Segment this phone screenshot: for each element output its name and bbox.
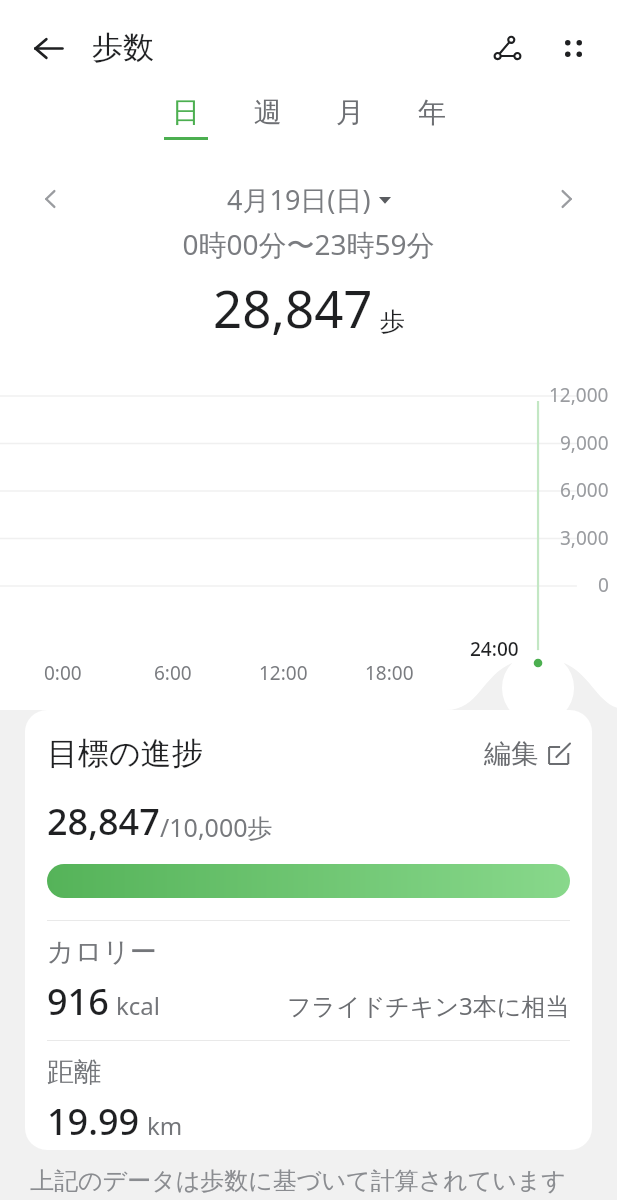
button[interactable]: Next day (543, 176, 589, 222)
staticText: 28,847 (213, 273, 373, 342)
button[interactable]: 月 (322, 95, 378, 137)
staticText: 4月19日(日) (227, 181, 371, 218)
staticText: カロリー (47, 935, 157, 969)
staticText: 12:00 (259, 660, 308, 686)
button[interactable]: 年 (404, 95, 460, 137)
staticText: 目標の進捗 (47, 734, 203, 773)
staticText: 歩 (380, 306, 405, 337)
button[interactable]: 日 (158, 95, 214, 140)
staticText: 18:00 (365, 660, 414, 686)
staticText: kcal (116, 989, 160, 1022)
staticText: 0時00分〜23時59分 (0, 225, 617, 263)
staticText: フライドチキン3本に相当 (287, 989, 570, 1022)
button[interactable]: 4月19日(日) (227, 181, 391, 218)
button[interactable]: Share (483, 24, 531, 72)
staticText: 3,000 (560, 525, 609, 551)
staticText: 6,000 (560, 477, 609, 503)
staticText: 6:00 (154, 660, 192, 686)
staticText: 距離 (47, 1055, 101, 1089)
button[interactable]: Previous day (28, 176, 74, 222)
staticText: 916 (47, 977, 109, 1026)
staticText: 年 (418, 95, 446, 130)
button[interactable]: 編集 (484, 737, 570, 771)
staticText: 0:00 (44, 660, 82, 686)
staticText: 19.99 (47, 1097, 140, 1146)
staticText: 9,000 (560, 430, 609, 456)
button[interactable]: More options (549, 24, 597, 72)
staticText: 24:00 (470, 636, 519, 662)
staticText: 28,847 (47, 797, 160, 846)
staticText: 12,000 (549, 382, 609, 408)
staticText: 月 (336, 95, 364, 130)
staticText: 週 (254, 95, 282, 130)
staticText: 編集 (484, 737, 538, 771)
staticText: 上記のデータは歩数に基づいて計算されています (30, 1166, 566, 1196)
button[interactable]: Back (24, 24, 72, 72)
staticText: /10,000歩 (160, 810, 273, 844)
staticText: 日 (172, 95, 200, 130)
button[interactable]: 週 (240, 95, 296, 137)
staticText: 0 (598, 572, 609, 598)
staticText: km (147, 1109, 183, 1142)
staticText: 歩数 (92, 28, 154, 67)
